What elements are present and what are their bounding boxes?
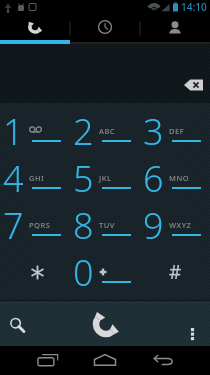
- button[interactable]: Call: [72, 305, 138, 343]
- button[interactable]: 4: [0, 150, 70, 197]
- staticText: 2: [73, 107, 94, 154]
- button[interactable]: Contacts tab: [140, 14, 210, 40]
- staticText: 5: [73, 154, 94, 201]
- button[interactable]: 9: [140, 197, 210, 244]
- button[interactable]: More options: [178, 313, 208, 343]
- staticText: DEF: [169, 126, 185, 136]
- button[interactable]: #: [140, 244, 210, 291]
- staticText: PQRS: [29, 220, 51, 230]
- staticText: 4: [3, 154, 24, 201]
- staticText: 8: [73, 201, 94, 248]
- staticText: #: [169, 259, 182, 285]
- button[interactable]: Call log tab: [70, 14, 140, 40]
- staticText: JKL: [99, 173, 112, 183]
- button[interactable]: Backspace: [184, 78, 203, 92]
- staticText: ABC: [99, 126, 116, 136]
- button[interactable]: 0: [70, 244, 140, 291]
- button[interactable]: 8: [70, 197, 140, 244]
- button[interactable]: [0, 244, 70, 291]
- staticText: WXYZ: [169, 220, 192, 230]
- button[interactable]: 3: [140, 103, 210, 150]
- button[interactable]: 7: [0, 197, 70, 244]
- button[interactable]: 2: [70, 103, 140, 150]
- staticText: TUV: [99, 220, 115, 230]
- button[interactable]: 1: [0, 103, 70, 150]
- button[interactable]: Search: [2, 311, 34, 339]
- staticText: 0: [73, 248, 94, 295]
- staticText: 3: [143, 107, 164, 154]
- button[interactable]: Dialer tab: [0, 14, 70, 40]
- staticText: 1: [3, 107, 24, 154]
- staticText: MNO: [169, 173, 190, 183]
- staticText: GHI: [29, 173, 45, 183]
- button[interactable]: 5: [70, 150, 140, 197]
- button[interactable]: 6: [140, 150, 210, 197]
- staticText: 7: [3, 201, 24, 248]
- staticText: 14:10: [181, 0, 207, 14]
- staticText: 9: [143, 201, 164, 248]
- staticText: 6: [143, 154, 164, 201]
